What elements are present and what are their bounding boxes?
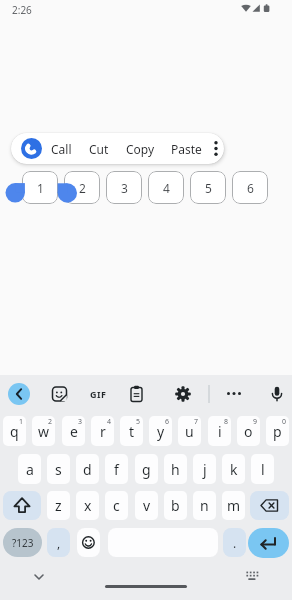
staticText: , bbox=[57, 535, 61, 551]
staticText: 4 bbox=[107, 417, 112, 427]
button[interactable]: 5 bbox=[190, 171, 226, 204]
staticText: . bbox=[233, 535, 237, 551]
staticText: ?123 bbox=[12, 536, 34, 550]
button[interactable]: y bbox=[149, 416, 172, 446]
button[interactable] bbox=[250, 491, 289, 520]
staticText: q bbox=[10, 422, 19, 441]
button[interactable] bbox=[172, 383, 194, 405]
button[interactable] bbox=[241, 565, 263, 587]
staticText: l bbox=[261, 460, 265, 479]
button[interactable] bbox=[21, 138, 42, 159]
button[interactable]: 3 bbox=[106, 171, 142, 204]
button[interactable]: c bbox=[105, 491, 128, 520]
staticText: b bbox=[171, 496, 180, 515]
button[interactable]: f bbox=[105, 454, 128, 484]
staticText: j bbox=[203, 460, 207, 479]
button[interactable]: j bbox=[193, 454, 216, 484]
button[interactable]: h bbox=[164, 454, 187, 484]
button[interactable] bbox=[8, 383, 30, 405]
button[interactable]: o bbox=[237, 416, 260, 446]
button[interactable]: l bbox=[251, 454, 274, 484]
button[interactable]: 1 bbox=[22, 171, 58, 204]
button[interactable] bbox=[48, 383, 70, 405]
button[interactable]: p bbox=[266, 416, 289, 446]
button[interactable]: x bbox=[76, 491, 99, 520]
staticText: 2 bbox=[48, 417, 53, 427]
button[interactable]: q bbox=[3, 416, 26, 446]
button[interactable]: ?123 bbox=[3, 528, 42, 557]
staticText: 1 bbox=[19, 417, 24, 427]
staticText: Copy bbox=[126, 141, 155, 157]
staticText: 1 bbox=[37, 180, 44, 196]
staticText: w bbox=[38, 422, 50, 441]
staticText: 2:26 bbox=[12, 3, 32, 17]
staticText: a bbox=[26, 460, 34, 479]
staticText: c bbox=[113, 496, 120, 515]
staticText: x bbox=[84, 496, 92, 515]
staticText: m bbox=[227, 496, 241, 515]
button[interactable]: d bbox=[76, 454, 99, 484]
button[interactable]: GIF bbox=[84, 383, 113, 405]
staticText: u bbox=[185, 422, 194, 441]
button[interactable] bbox=[3, 491, 41, 520]
button[interactable]: Copy bbox=[118, 133, 162, 164]
button[interactable]: b bbox=[164, 491, 187, 520]
staticText: 4 bbox=[163, 180, 170, 196]
button[interactable]: z bbox=[47, 491, 70, 520]
button[interactable]: i bbox=[208, 416, 231, 446]
staticText: o bbox=[244, 422, 253, 441]
button[interactable]: . bbox=[223, 528, 246, 557]
staticText: y bbox=[157, 422, 165, 441]
button[interactable]: 6 bbox=[232, 171, 268, 204]
staticText: 5 bbox=[136, 417, 141, 427]
button[interactable]: g bbox=[135, 454, 158, 484]
staticText: 2 bbox=[79, 180, 86, 196]
button[interactable] bbox=[126, 383, 148, 405]
button[interactable]: s bbox=[47, 454, 70, 484]
staticText: Paste bbox=[171, 141, 202, 157]
staticText: 6 bbox=[165, 417, 170, 427]
button[interactable]: n bbox=[193, 491, 216, 520]
staticText: h bbox=[171, 460, 180, 479]
button[interactable]: a bbox=[18, 454, 41, 484]
staticText: 9 bbox=[253, 417, 258, 427]
button[interactable]: Paste bbox=[164, 133, 208, 164]
button[interactable]: t bbox=[120, 416, 143, 446]
button[interactable]: 2 bbox=[64, 171, 100, 204]
staticText: g bbox=[142, 460, 151, 479]
button[interactable] bbox=[77, 528, 100, 557]
staticText: z bbox=[55, 496, 62, 515]
staticText: Cut bbox=[89, 141, 109, 157]
button[interactable]: w bbox=[32, 416, 55, 446]
staticText: i bbox=[218, 422, 222, 441]
staticText: k bbox=[230, 460, 238, 479]
button[interactable]: u bbox=[178, 416, 201, 446]
staticText: p bbox=[273, 422, 282, 441]
button[interactable]: e bbox=[62, 416, 85, 446]
button[interactable]: v bbox=[135, 491, 158, 520]
staticText: r bbox=[100, 422, 106, 441]
button[interactable]: Call bbox=[39, 133, 83, 164]
button[interactable] bbox=[28, 566, 50, 588]
staticText: v bbox=[143, 496, 151, 515]
button[interactable] bbox=[266, 383, 288, 405]
button[interactable] bbox=[223, 383, 245, 405]
button[interactable]: 4 bbox=[148, 171, 184, 204]
staticText: d bbox=[83, 460, 92, 479]
button[interactable]: r bbox=[91, 416, 114, 446]
button[interactable] bbox=[248, 528, 289, 558]
staticText: n bbox=[200, 496, 209, 515]
button[interactable]: Cut bbox=[77, 133, 121, 164]
button[interactable]: k bbox=[222, 454, 245, 484]
button[interactable]: m bbox=[222, 491, 245, 520]
staticText: 8 bbox=[224, 417, 229, 427]
staticText: 3 bbox=[121, 180, 128, 196]
staticText: 3 bbox=[78, 417, 83, 427]
staticText: s bbox=[55, 460, 62, 479]
button[interactable] bbox=[207, 133, 224, 164]
staticText: 0 bbox=[282, 417, 287, 427]
button[interactable]: , bbox=[47, 528, 70, 557]
staticText: 7 bbox=[194, 417, 199, 427]
staticText: f bbox=[114, 460, 119, 479]
